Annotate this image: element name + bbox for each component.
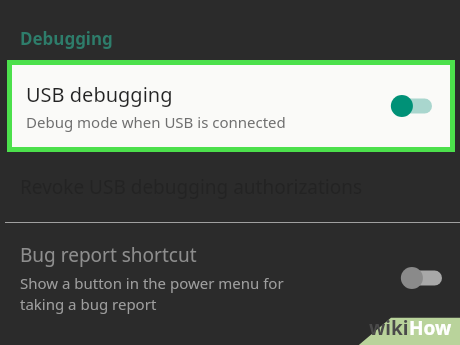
staticText: Show a button in the power menu for taki… [20,273,284,315]
staticText: Debugging [20,27,113,50]
staticText: Debug mode when USB is connected [26,112,286,132]
staticText: USB debugging [26,81,173,108]
staticText: How [409,315,452,341]
button[interactable]: USB debugging [12,65,450,147]
staticText: wiki [369,315,409,341]
other: Bug report shortcut toggle [400,266,442,290]
button[interactable]: Bug report shortcut [0,223,460,333]
staticText: Bug report shortcut [20,242,197,268]
